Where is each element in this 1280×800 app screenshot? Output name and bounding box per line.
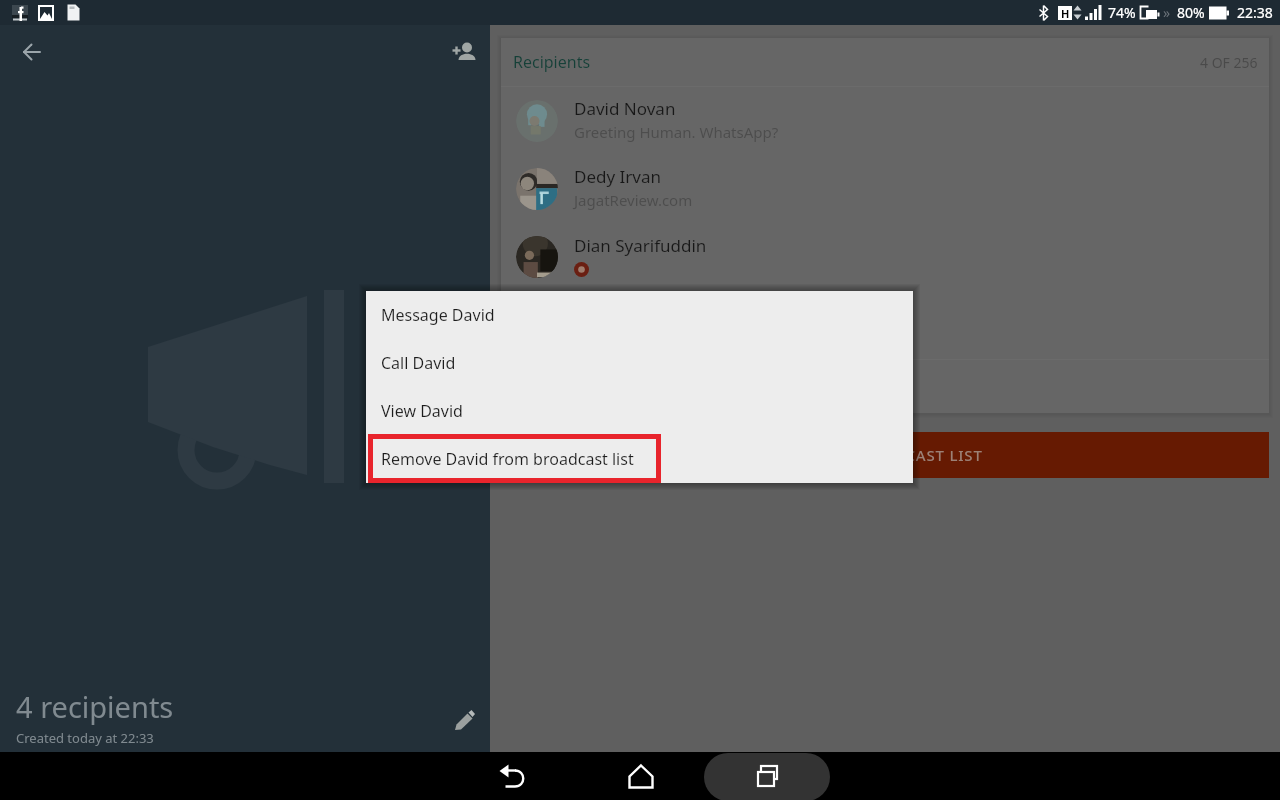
staticText: View David [381,400,463,422]
staticText: Recipients [513,51,591,73]
button[interactable]: Home [608,752,673,800]
staticText: Dedy Irvan [574,165,662,188]
button[interactable]: Back [480,752,545,800]
staticText: H [1061,6,1070,20]
staticText: David Novan [574,97,676,120]
button[interactable]: Dian Syarifuddin [501,223,1269,291]
staticText: Message David [381,304,495,326]
button[interactable]: DELETE BROADCAST LIST [501,432,1269,478]
staticText: DELETE BROADCAST LIST [788,445,983,465]
button[interactable]: Call David [366,339,913,387]
staticText: 4 OF 256 [1200,53,1258,72]
button[interactable] [501,360,1269,413]
staticText: 74% [1108,3,1136,22]
button[interactable]: View David [366,387,913,435]
staticText: 22:38 [1237,3,1273,22]
staticText: » [1163,3,1171,22]
button[interactable]: Back [8,28,56,76]
staticText: JagatReview.com [574,190,693,210]
button[interactable]: Message David [366,291,913,339]
button[interactable]: Recents [704,753,830,800]
staticText: Created today at 22:33 [16,729,154,747]
button[interactable]: Edit [441,696,489,744]
staticText: Remove David from broadcast list [381,448,634,470]
button[interactable]: David Novan [501,87,1269,155]
staticText: Greeting Human. WhatsApp? [574,122,779,142]
staticText: 80% [1177,3,1205,22]
staticText: Dian Syarifuddin [574,234,707,257]
button[interactable]: Dedy Irvan [501,155,1269,223]
button[interactable]: Add recipient [440,28,488,76]
staticText: Call David [381,352,456,374]
button[interactable]: Remove David from broadcast list [366,435,913,483]
button[interactable] [501,291,1269,359]
button[interactable]: Recent apps [735,752,800,800]
staticText: 4 recipients [16,687,174,726]
